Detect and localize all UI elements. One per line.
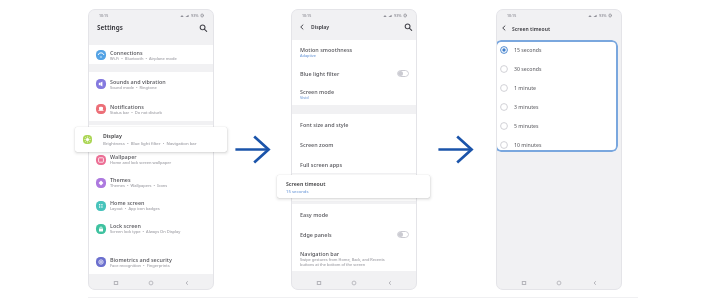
staticText: Easy mode (300, 211, 329, 218)
staticText: Screen timeout (512, 26, 551, 33)
staticText: Themes • Wallpapers • Icons (110, 183, 168, 188)
staticText: Screen timeout (300, 182, 341, 189)
staticText: Navigation bar (300, 250, 340, 257)
staticText: Screen zoom (300, 141, 334, 148)
staticText: 93% (191, 13, 199, 18)
button[interactable]: Blue light filter (291, 63, 417, 83)
staticText: Status bar • Do not disturb (110, 110, 162, 115)
button[interactable]: Screen timeout (291, 174, 417, 201)
staticText: 30 seconds (514, 65, 542, 72)
button[interactable]: 3 minutes (496, 97, 618, 116)
staticText: Connections (110, 49, 143, 56)
staticText: 3 minutes (514, 103, 539, 110)
staticText: 10:15 (507, 13, 517, 18)
button[interactable]: Sounds and vibration (88, 72, 214, 97)
staticText: buttons at the bottom of the screen (300, 262, 366, 267)
button[interactable]: Connections (88, 45, 214, 64)
button[interactable]: Back (387, 280, 393, 286)
button[interactable]: Screen zoom (291, 134, 417, 154)
staticText: Notifications (110, 103, 144, 110)
staticText: 93% (599, 13, 607, 18)
button[interactable]: Screen timeout (277, 175, 430, 198)
button[interactable]: Notifications (88, 97, 214, 121)
button[interactable]: Recents (316, 280, 322, 286)
button[interactable]: Lock screen (88, 217, 214, 240)
button[interactable]: Back (184, 280, 190, 286)
staticText: Lock screen (110, 222, 141, 229)
staticText: Brightness • Blue light filter • Navigat… (103, 140, 197, 146)
staticText: Wallpaper (110, 153, 137, 160)
button[interactable]: 30 seconds (496, 59, 618, 78)
staticText: Biometrics and security (110, 256, 172, 263)
button[interactable]: Recents (113, 280, 119, 286)
staticText: Screen mode (300, 88, 335, 95)
button[interactable]: Display (75, 127, 227, 152)
button[interactable]: Navigation bar (291, 244, 417, 271)
staticText: Display (103, 132, 122, 139)
button[interactable]: Home (351, 280, 357, 286)
staticText: Screen lock type • Always On Display (110, 229, 181, 234)
staticText: Settings (97, 23, 123, 32)
staticText: Screen timeout (286, 180, 326, 187)
button[interactable]: Easy mode (291, 204, 417, 224)
staticText: 10 minutes (514, 141, 542, 148)
staticText: 15 seconds (514, 46, 542, 53)
staticText: 15 seconds (300, 189, 321, 194)
button[interactable]: Back (298, 23, 306, 31)
staticText: Face recognition • Fingerprints (110, 263, 170, 268)
button[interactable]: Themes (88, 171, 214, 194)
staticText: 1 minute (514, 84, 537, 91)
staticText: 15 seconds (286, 188, 309, 194)
button[interactable]: Full screen apps (291, 154, 417, 173)
button[interactable]: 5 minutes (496, 116, 618, 135)
staticText: Full screen apps (300, 161, 343, 168)
button[interactable]: Back (592, 280, 598, 286)
button[interactable]: Toggle (397, 70, 409, 77)
button[interactable]: Wallpaper (88, 148, 214, 171)
button[interactable]: Home (148, 280, 154, 286)
button[interactable]: Edge panels (291, 224, 417, 244)
button[interactable]: Biometrics and security (88, 249, 214, 274)
button[interactable]: Home screen (88, 194, 214, 217)
staticText: Adaptive (300, 53, 317, 58)
staticText: Wi-Fi • Bluetooth • Airplane mode (110, 56, 177, 61)
button[interactable]: Motion smoothness (291, 40, 417, 63)
staticText: Sound mode • Ringtone (110, 85, 157, 90)
button[interactable]: Screen mode (291, 83, 417, 105)
staticText: Edge panels (300, 231, 332, 238)
button[interactable]: Back (500, 24, 508, 32)
staticText: 5 minutes (514, 122, 539, 129)
staticText: Motion smoothness (300, 46, 353, 53)
staticText: 93% (394, 13, 402, 18)
button[interactable]: 1 minute (496, 78, 618, 97)
staticText: Swipe gestures from Home, Back, and Rece… (300, 257, 385, 262)
staticText: Sounds and vibration (110, 78, 166, 85)
staticText: 10:15 (302, 13, 312, 18)
staticText: Blue light filter (300, 70, 340, 77)
staticText: Themes (110, 176, 131, 183)
button[interactable]: Search (404, 23, 412, 31)
button[interactable]: Search (199, 24, 207, 32)
button[interactable]: Recents (521, 280, 527, 286)
button[interactable]: 10 minutes (496, 135, 618, 152)
staticText: Display (311, 24, 330, 31)
button[interactable]: Home (556, 280, 562, 286)
staticText: 10:15 (99, 13, 109, 18)
button[interactable]: 15 seconds (496, 40, 618, 59)
staticText: Home screen (110, 199, 145, 206)
staticText: Font size and style (300, 121, 349, 128)
button[interactable]: Font size and style (291, 114, 417, 134)
staticText: Home and lock screen wallpaper (110, 160, 172, 165)
staticText: Vivid (300, 95, 309, 100)
button[interactable]: Toggle (397, 231, 409, 238)
staticText: Layout • App icon badges (110, 206, 160, 211)
